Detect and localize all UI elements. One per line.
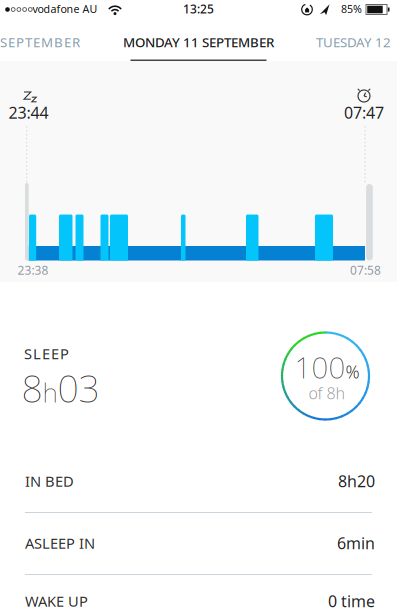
button[interactable]: TUESDAY 12 [281, 23, 391, 61]
button[interactable]: S E P T E M B E R [0, 23, 120, 61]
staticText: of 8h [308, 382, 345, 404]
staticText: 8h03 [21, 363, 99, 413]
staticText: 23:38 [17, 262, 48, 278]
staticText: 07:58 [350, 262, 381, 278]
staticText: WAKE UP [25, 591, 88, 608]
staticText: 07:47 [344, 102, 384, 123]
staticText: 6min [337, 532, 375, 554]
staticText: 23:44 [8, 102, 48, 123]
staticText: 100% [294, 347, 359, 386]
staticText: 8h20 [338, 470, 375, 492]
staticText: S E P T E M B E R [0, 33, 80, 51]
staticText: vodafone AU [32, 2, 97, 16]
staticText: MONDAY 11 SEPTEMBER [123, 33, 274, 51]
button[interactable]: MONDAY 11 SEPTEMBER [88, 23, 308, 61]
staticText: 13:25 [183, 1, 214, 17]
staticText: 85% [341, 2, 362, 16]
staticText: IN BED [25, 471, 74, 491]
staticText: S L E E P [24, 344, 69, 363]
staticText: 0 time [328, 590, 375, 608]
staticText: ASLEEP IN [25, 533, 95, 553]
staticText: TUESDAY 12 [316, 33, 391, 51]
